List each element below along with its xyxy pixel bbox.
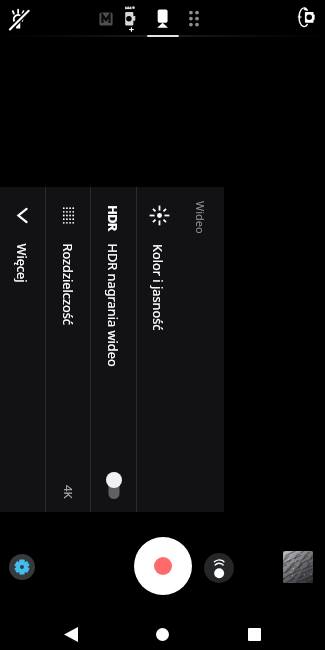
staticText: Kolor i jasność: [150, 244, 167, 331]
button[interactable]: Gallery: [283, 551, 313, 583]
button[interactable]: Video mode: [151, 5, 174, 32]
button[interactable]: Photo mode: [118, 3, 142, 33]
button[interactable]: Flash off: [5, 5, 33, 33]
staticText: Rozdzielczość: [59, 243, 76, 325]
button[interactable]: Więcej: [0, 187, 45, 512]
button[interactable]: HDR: [91, 187, 136, 512]
button[interactable]: Home: [144, 619, 180, 649]
staticText: HDR: [104, 205, 122, 231]
button[interactable]: Settings: [9, 554, 35, 580]
staticText: Więcej: [13, 243, 30, 283]
staticText: Wideo: [193, 201, 208, 234]
staticText: HDR nagrania wideo: [104, 243, 121, 367]
button[interactable]: Focus mode: [204, 553, 234, 583]
button[interactable]: Rozdzielczość: [46, 187, 90, 512]
button[interactable]: Record: [134, 537, 192, 595]
button[interactable]: Manual mode: [95, 8, 117, 30]
button[interactable]: Recents: [236, 619, 272, 649]
button[interactable]: More modes: [183, 6, 205, 28]
staticText: 4K: [60, 485, 76, 499]
button[interactable]: Back: [53, 619, 89, 649]
button[interactable]: Switch camera: [294, 5, 318, 29]
button[interactable]: Kolor i jasność: [137, 187, 224, 512]
